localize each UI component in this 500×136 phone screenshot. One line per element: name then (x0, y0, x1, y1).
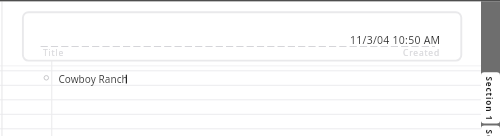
button[interactable]: Note page (0, 0, 500, 136)
